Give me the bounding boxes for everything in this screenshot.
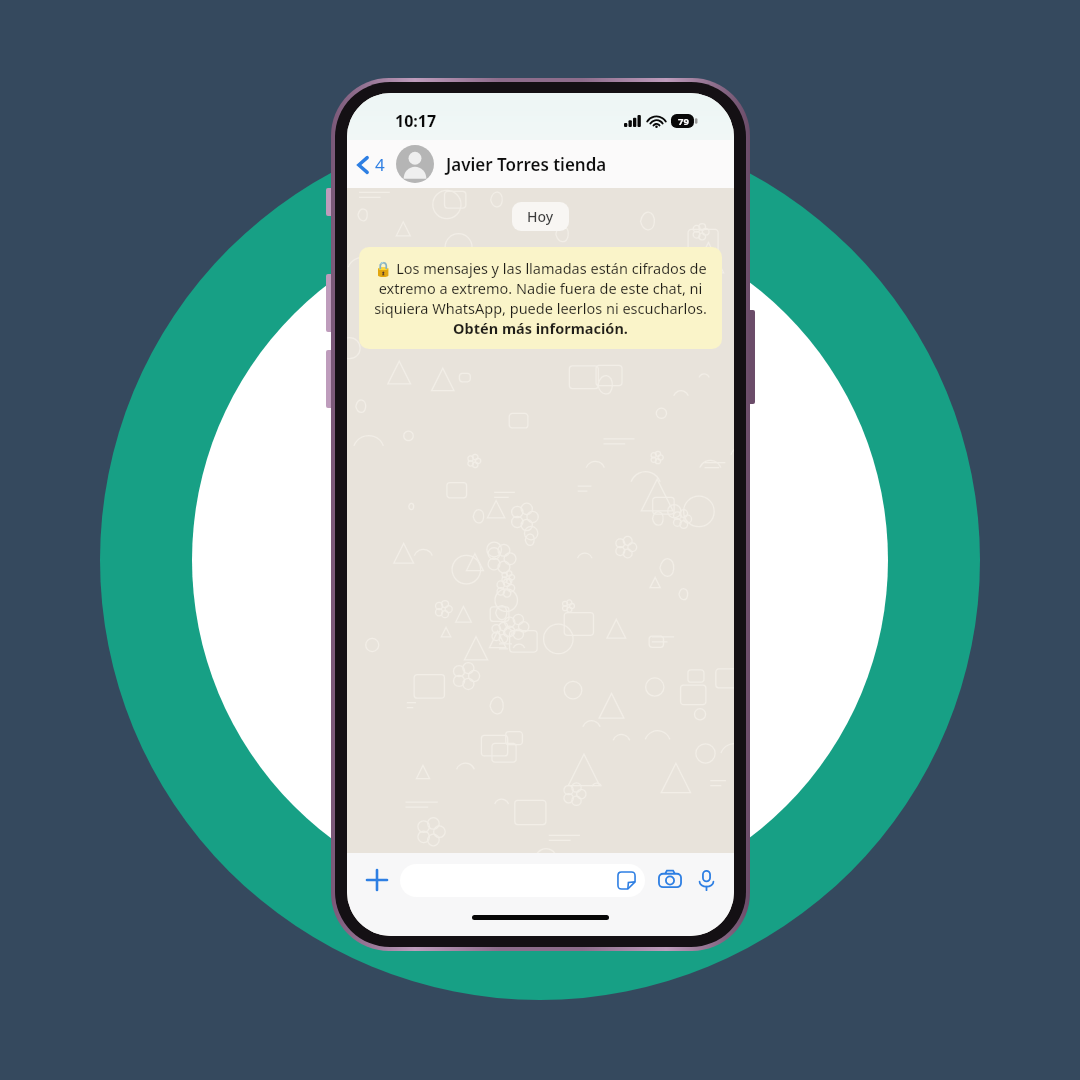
staticText: Javier Torres tienda xyxy=(446,153,607,176)
button[interactable]: Attach xyxy=(360,863,394,897)
button[interactable]: 🔒 Los mensajes y las llamadas están cifr… xyxy=(359,247,722,349)
staticText: 4 xyxy=(375,153,385,176)
staticText: 10:17 xyxy=(395,110,437,132)
button[interactable]: Hoy xyxy=(512,202,569,231)
button[interactable]: Voice message xyxy=(691,865,721,895)
button[interactable]: Stickers xyxy=(615,869,638,892)
button[interactable]: Javier Torres tienda xyxy=(396,145,734,183)
button[interactable]: Stickers xyxy=(400,864,645,897)
staticText: 🔒 Los mensajes y las llamadas están cifr… xyxy=(372,258,709,338)
staticText: 79 xyxy=(678,115,689,128)
button[interactable]: Back, 4 chats xyxy=(347,145,391,184)
staticText: Hoy xyxy=(527,207,554,226)
button[interactable]: Camera xyxy=(655,865,685,895)
